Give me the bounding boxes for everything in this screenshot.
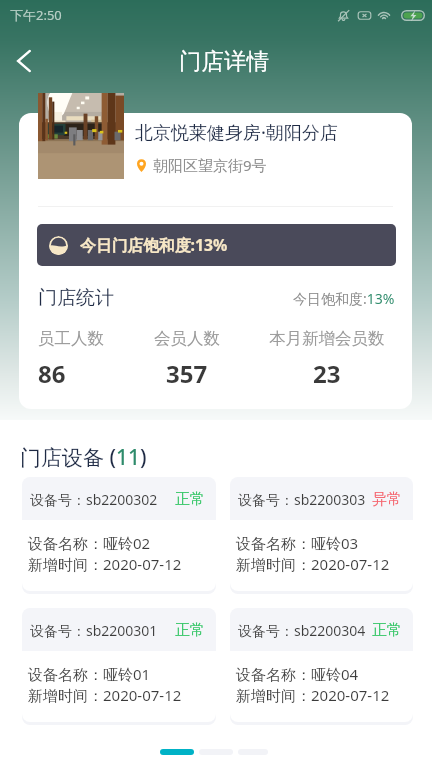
staticText: 新增时间：2020-07-12	[28, 685, 182, 705]
staticText: 正常	[372, 621, 402, 640]
staticText: 北京悦莱健身房·朝阳分店	[135, 120, 338, 145]
staticText: 设备名称：哑铃02	[28, 533, 151, 553]
staticText: 新增时间：2020-07-12	[236, 554, 390, 574]
staticText: 设备号：sb2200303	[238, 490, 366, 509]
staticText: 员工人数	[38, 328, 104, 349]
staticText: 正常	[175, 490, 205, 509]
staticText: 门店设备 (11)	[20, 443, 147, 472]
staticText: 设备号：sb2200301	[30, 621, 158, 640]
staticText: 今日门店饱和度:13%	[80, 234, 228, 256]
button[interactable]: 今日门店饱和度:13%	[37, 224, 396, 266]
staticText: 下午2:50	[10, 6, 62, 24]
button[interactable]: 设备号：sb2200304	[230, 608, 413, 722]
staticText: 异常	[372, 490, 402, 509]
staticText: 设备名称：哑铃01	[28, 664, 151, 684]
button[interactable]: 设备号：sb2200301	[22, 608, 216, 722]
staticText: 门店统计	[38, 286, 114, 310]
staticText: 357	[166, 357, 208, 390]
staticText: 新增时间：2020-07-12	[28, 554, 182, 574]
button[interactable]: Page 1	[160, 749, 194, 755]
staticText: 设备号：sb2200304	[238, 621, 366, 640]
button[interactable]: 设备号：sb2200302	[22, 477, 216, 591]
button[interactable]: 设备号：sb2200303	[230, 477, 413, 591]
staticText: 朝阳区望京街9号	[153, 155, 267, 175]
staticText: 门店详情	[179, 47, 269, 75]
staticText: 正常	[175, 621, 205, 640]
staticText: 23	[313, 357, 341, 390]
staticText: 86	[38, 357, 66, 390]
staticText: 设备号：sb2200302	[30, 490, 158, 509]
staticText: 今日饱和度:13%	[293, 289, 395, 308]
button[interactable]: Back	[0, 38, 46, 84]
staticText: 新增时间：2020-07-12	[236, 685, 390, 705]
staticText: 本月新增会员数	[269, 328, 385, 349]
staticText: 会员人数	[154, 328, 220, 349]
staticText: 设备名称：哑铃03	[236, 533, 359, 553]
staticText: 设备名称：哑铃04	[236, 664, 359, 684]
